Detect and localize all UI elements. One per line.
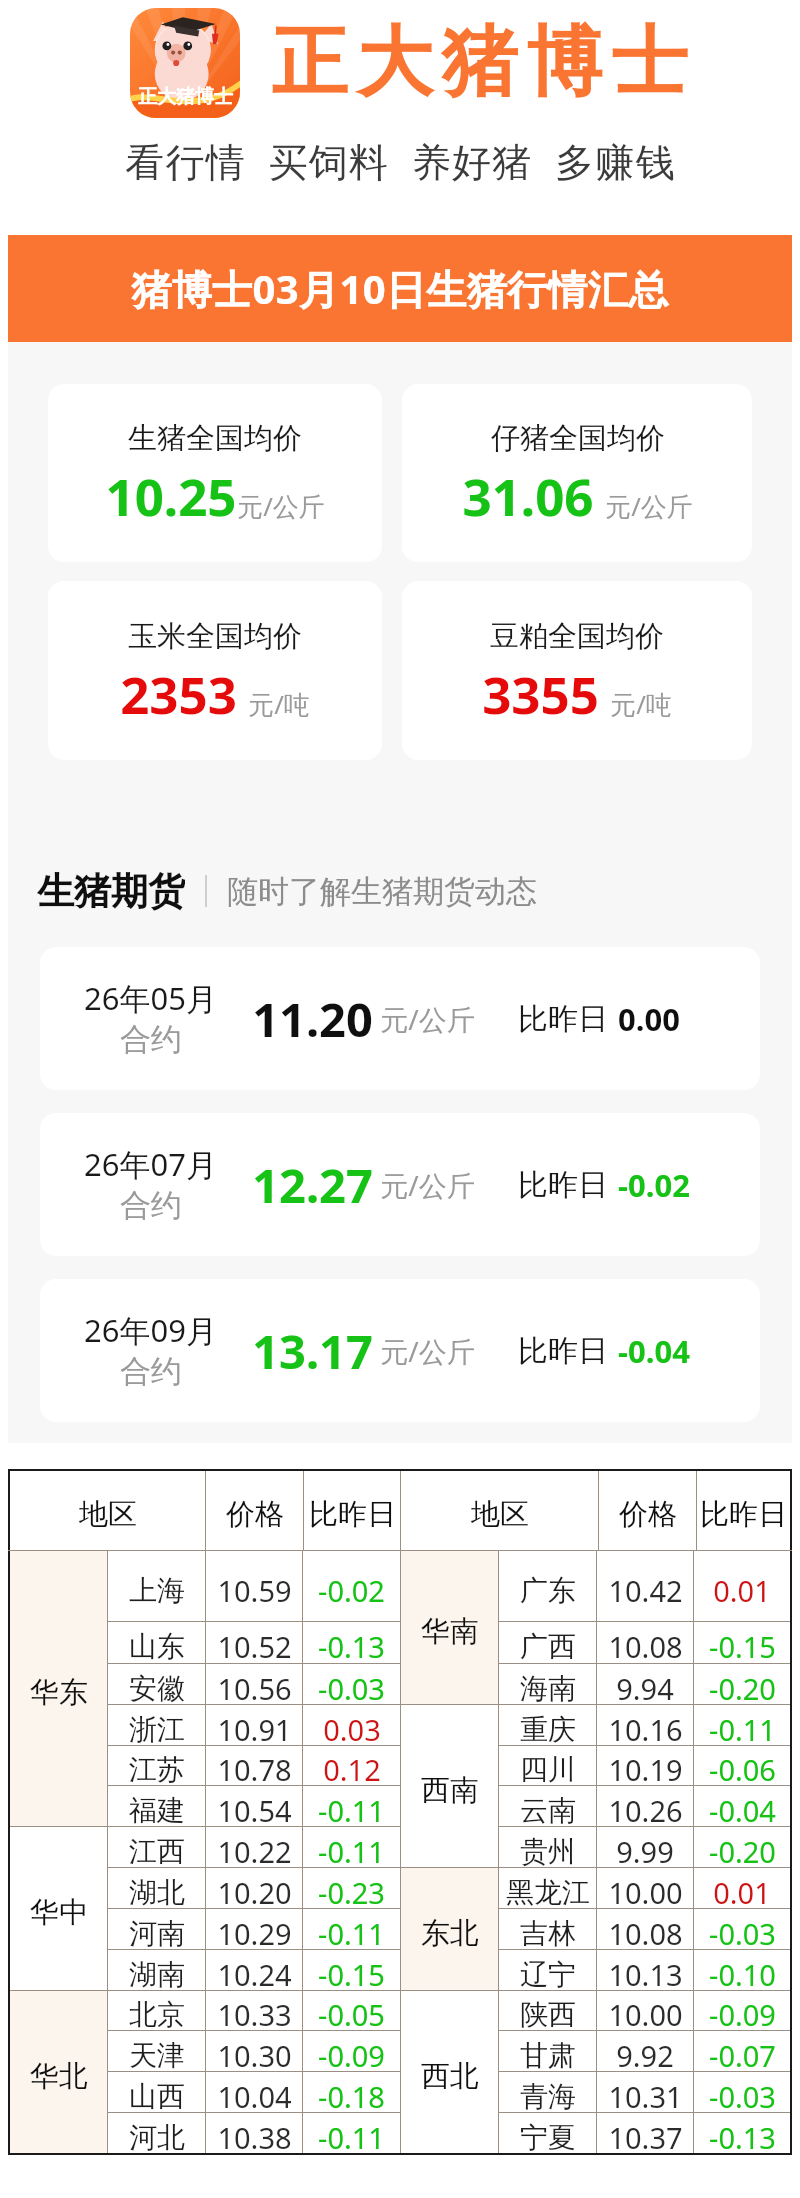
- button[interactable]: 吉林: [499, 1909, 790, 1949]
- staticText: -0.04: [618, 1330, 690, 1372]
- button[interactable]: 宁夏: [499, 2113, 790, 2153]
- button[interactable]: 正大猪博士 App icon: [130, 8, 240, 118]
- staticText: 13.17: [252, 1319, 373, 1383]
- button[interactable]: 福建: [108, 1786, 400, 1826]
- button[interactable]: 江苏: [108, 1746, 400, 1785]
- staticText: 比昨日: [518, 1000, 608, 1038]
- staticText: 黑龙江: [506, 1875, 590, 1910]
- button[interactable]: 湖北: [108, 1868, 400, 1908]
- button[interactable]: 陕西: [499, 1991, 790, 2030]
- staticText: 西南: [421, 1772, 479, 1809]
- staticText: 10.29: [217, 1914, 292, 1953]
- staticText: 天津: [129, 2038, 185, 2073]
- staticText: 10.16: [608, 1710, 683, 1749]
- staticText: -0.20: [709, 1669, 776, 1708]
- button[interactable]: 安徽: [108, 1664, 400, 1704]
- button[interactable]: 河南: [108, 1909, 400, 1949]
- staticText: 10.52: [217, 1627, 292, 1666]
- staticText: 仔猪全国均价: [491, 420, 665, 457]
- staticText: 随时了解生猪期货动态: [227, 872, 537, 911]
- staticText: 0.12: [323, 1750, 381, 1789]
- staticText: 10.13: [608, 1955, 683, 1994]
- staticText: -0.15: [709, 1627, 776, 1666]
- button[interactable]: 浙江: [108, 1705, 400, 1745]
- button[interactable]: 黑龙江: [499, 1868, 790, 1908]
- button[interactable]: 26年07月: [40, 1113, 760, 1256]
- staticText: 华北: [30, 2058, 88, 2095]
- staticText: -0.23: [318, 1873, 385, 1912]
- button[interactable]: 广东: [499, 1551, 790, 1621]
- staticText: 价格: [226, 1496, 284, 1533]
- staticText: 元/公斤: [380, 1166, 475, 1204]
- staticText: 10.91: [217, 1710, 292, 1749]
- staticText: 正大猪博士: [138, 85, 233, 109]
- button[interactable]: 豆粕全国均价: [402, 581, 752, 760]
- staticText: 四川: [520, 1752, 576, 1787]
- staticText: -0.11: [709, 1710, 776, 1749]
- button[interactable]: 猪博士03月10日生猪行情汇总: [8, 235, 792, 342]
- staticText: 9.92: [616, 2036, 674, 2075]
- staticText: 10.19: [608, 1750, 683, 1789]
- staticText: 9.99: [616, 1832, 674, 1871]
- staticText: 3355: [482, 659, 599, 728]
- button[interactable]: 广西: [499, 1622, 790, 1663]
- staticText: 江苏: [129, 1752, 185, 1787]
- staticText: -0.11: [318, 1914, 385, 1953]
- staticText: -0.06: [709, 1750, 776, 1789]
- button[interactable]: 四川: [499, 1746, 790, 1785]
- staticText: 元/吨: [610, 686, 672, 722]
- staticText: 陕西: [520, 1997, 576, 2032]
- button[interactable]: 河北: [108, 2113, 400, 2153]
- staticText: 生猪全国均价: [128, 420, 302, 457]
- staticText: -0.15: [318, 1955, 385, 1994]
- button[interactable]: 玉米全国均价: [48, 581, 382, 760]
- staticText: 湖北: [129, 1875, 185, 1910]
- staticText: 青海: [520, 2079, 576, 2114]
- staticText: -0.18: [318, 2077, 385, 2116]
- button[interactable]: 江西: [108, 1827, 400, 1867]
- staticText: 比昨日: [700, 1496, 787, 1533]
- staticText: -0.07: [709, 2036, 776, 2075]
- staticText: 山西: [129, 2079, 185, 2114]
- button[interactable]: 重庆: [499, 1705, 790, 1745]
- button[interactable]: 云南: [499, 1786, 790, 1826]
- button[interactable]: 湖南: [108, 1950, 400, 1990]
- button[interactable]: 海南: [499, 1664, 790, 1704]
- button[interactable]: 上海: [108, 1551, 400, 1621]
- button[interactable]: 青海: [499, 2072, 790, 2112]
- staticText: 北京: [129, 1997, 185, 2032]
- staticText: 10.20: [217, 1873, 292, 1912]
- button[interactable]: 甘肃: [499, 2031, 790, 2071]
- staticText: 0.01: [713, 1873, 771, 1912]
- staticText: 10.26: [608, 1791, 683, 1830]
- staticText: -0.10: [709, 1955, 776, 1994]
- staticText: 宁夏: [520, 2120, 576, 2155]
- staticText: 吉林: [520, 1916, 576, 1951]
- staticText: 比昨日: [309, 1496, 396, 1533]
- staticText: 看行情 买饲料 养好猪 多赚钱: [125, 134, 676, 187]
- staticText: 12.27: [252, 1153, 373, 1217]
- staticText: -0.03: [318, 1669, 385, 1708]
- staticText: 河南: [129, 1916, 185, 1951]
- button[interactable]: 北京: [108, 1991, 400, 2030]
- button[interactable]: 山东: [108, 1622, 400, 1663]
- staticText: 价格: [619, 1496, 677, 1533]
- staticText: 10.33: [217, 1995, 292, 2034]
- staticText: -0.13: [318, 1627, 385, 1666]
- staticText: 华南: [421, 1613, 479, 1650]
- staticText: 正大猪博士: [267, 15, 692, 111]
- staticText: 9.94: [616, 1669, 674, 1708]
- button[interactable]: 26年09月: [40, 1279, 760, 1422]
- staticText: -0.13: [709, 2118, 776, 2157]
- staticText: 10.54: [217, 1791, 292, 1830]
- button[interactable]: 26年05月: [40, 947, 760, 1090]
- button[interactable]: 辽宁: [499, 1950, 790, 1990]
- button[interactable]: 天津: [108, 2031, 400, 2071]
- button[interactable]: 贵州: [499, 1827, 790, 1867]
- button[interactable]: 仔猪全国均价: [402, 384, 752, 562]
- button[interactable]: 生猪全国均价: [48, 384, 382, 562]
- staticText: -0.04: [709, 1791, 776, 1830]
- staticText: 河北: [129, 2120, 185, 2155]
- button[interactable]: 山西: [108, 2072, 400, 2112]
- staticText: 云南: [520, 1793, 576, 1828]
